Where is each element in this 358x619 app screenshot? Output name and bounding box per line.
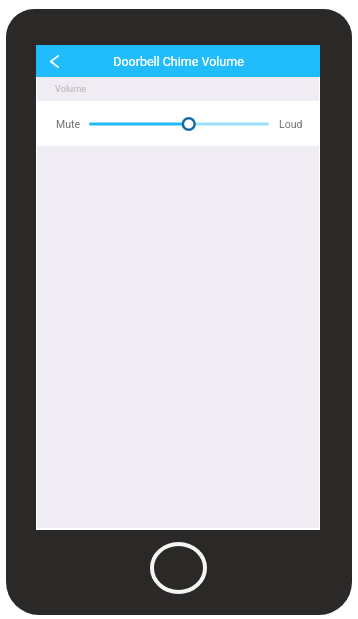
button[interactable]: Mute (37, 101, 319, 146)
staticText: Mute (56, 118, 80, 130)
button[interactable]: Home (150, 542, 207, 594)
staticText: Volume (55, 83, 87, 94)
staticText: Doorbell Chime Volume (113, 54, 244, 69)
button[interactable]: Chime volume (89, 116, 269, 132)
staticText: Loud (279, 118, 303, 130)
button[interactable]: Back (41, 48, 67, 74)
